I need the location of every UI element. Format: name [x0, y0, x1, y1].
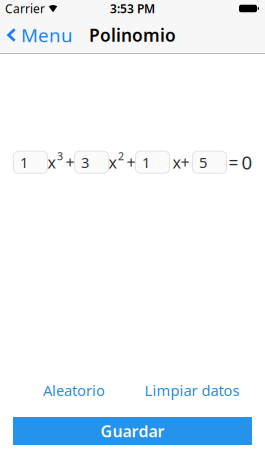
button[interactable]: Menu [7, 23, 73, 47]
staticText: = [228, 151, 238, 174]
staticText: 1 [142, 152, 150, 172]
staticText: Guardar [100, 420, 164, 442]
staticText: 2 [118, 149, 124, 163]
staticText: x [47, 152, 55, 173]
staticText: x+ [172, 152, 189, 173]
staticText: 3:53 PM [110, 0, 155, 16]
staticText: 3 [57, 149, 63, 163]
staticText: 5 [199, 152, 207, 172]
staticText: Limpiar datos [144, 380, 239, 400]
textField[interactable]: 5 [199, 152, 227, 172]
staticText: 1 [20, 152, 28, 172]
staticText: + [65, 152, 74, 173]
button[interactable]: Guardar [13, 417, 252, 445]
textField[interactable]: 1 [142, 152, 170, 172]
staticText: 0 [241, 150, 252, 175]
staticText: Carrier [5, 0, 45, 16]
staticText: Menu [21, 23, 73, 47]
staticText: Aleatorio [43, 380, 105, 400]
button[interactable]: Limpiar datos [144, 380, 239, 400]
staticText: 3 [81, 152, 89, 172]
textField[interactable]: 1 [20, 152, 48, 172]
staticText: x [108, 152, 116, 173]
staticText: + [126, 152, 135, 173]
textField[interactable]: 3 [81, 152, 109, 172]
staticText: Polinomio [89, 23, 176, 46]
button[interactable]: Aleatorio [43, 380, 105, 400]
